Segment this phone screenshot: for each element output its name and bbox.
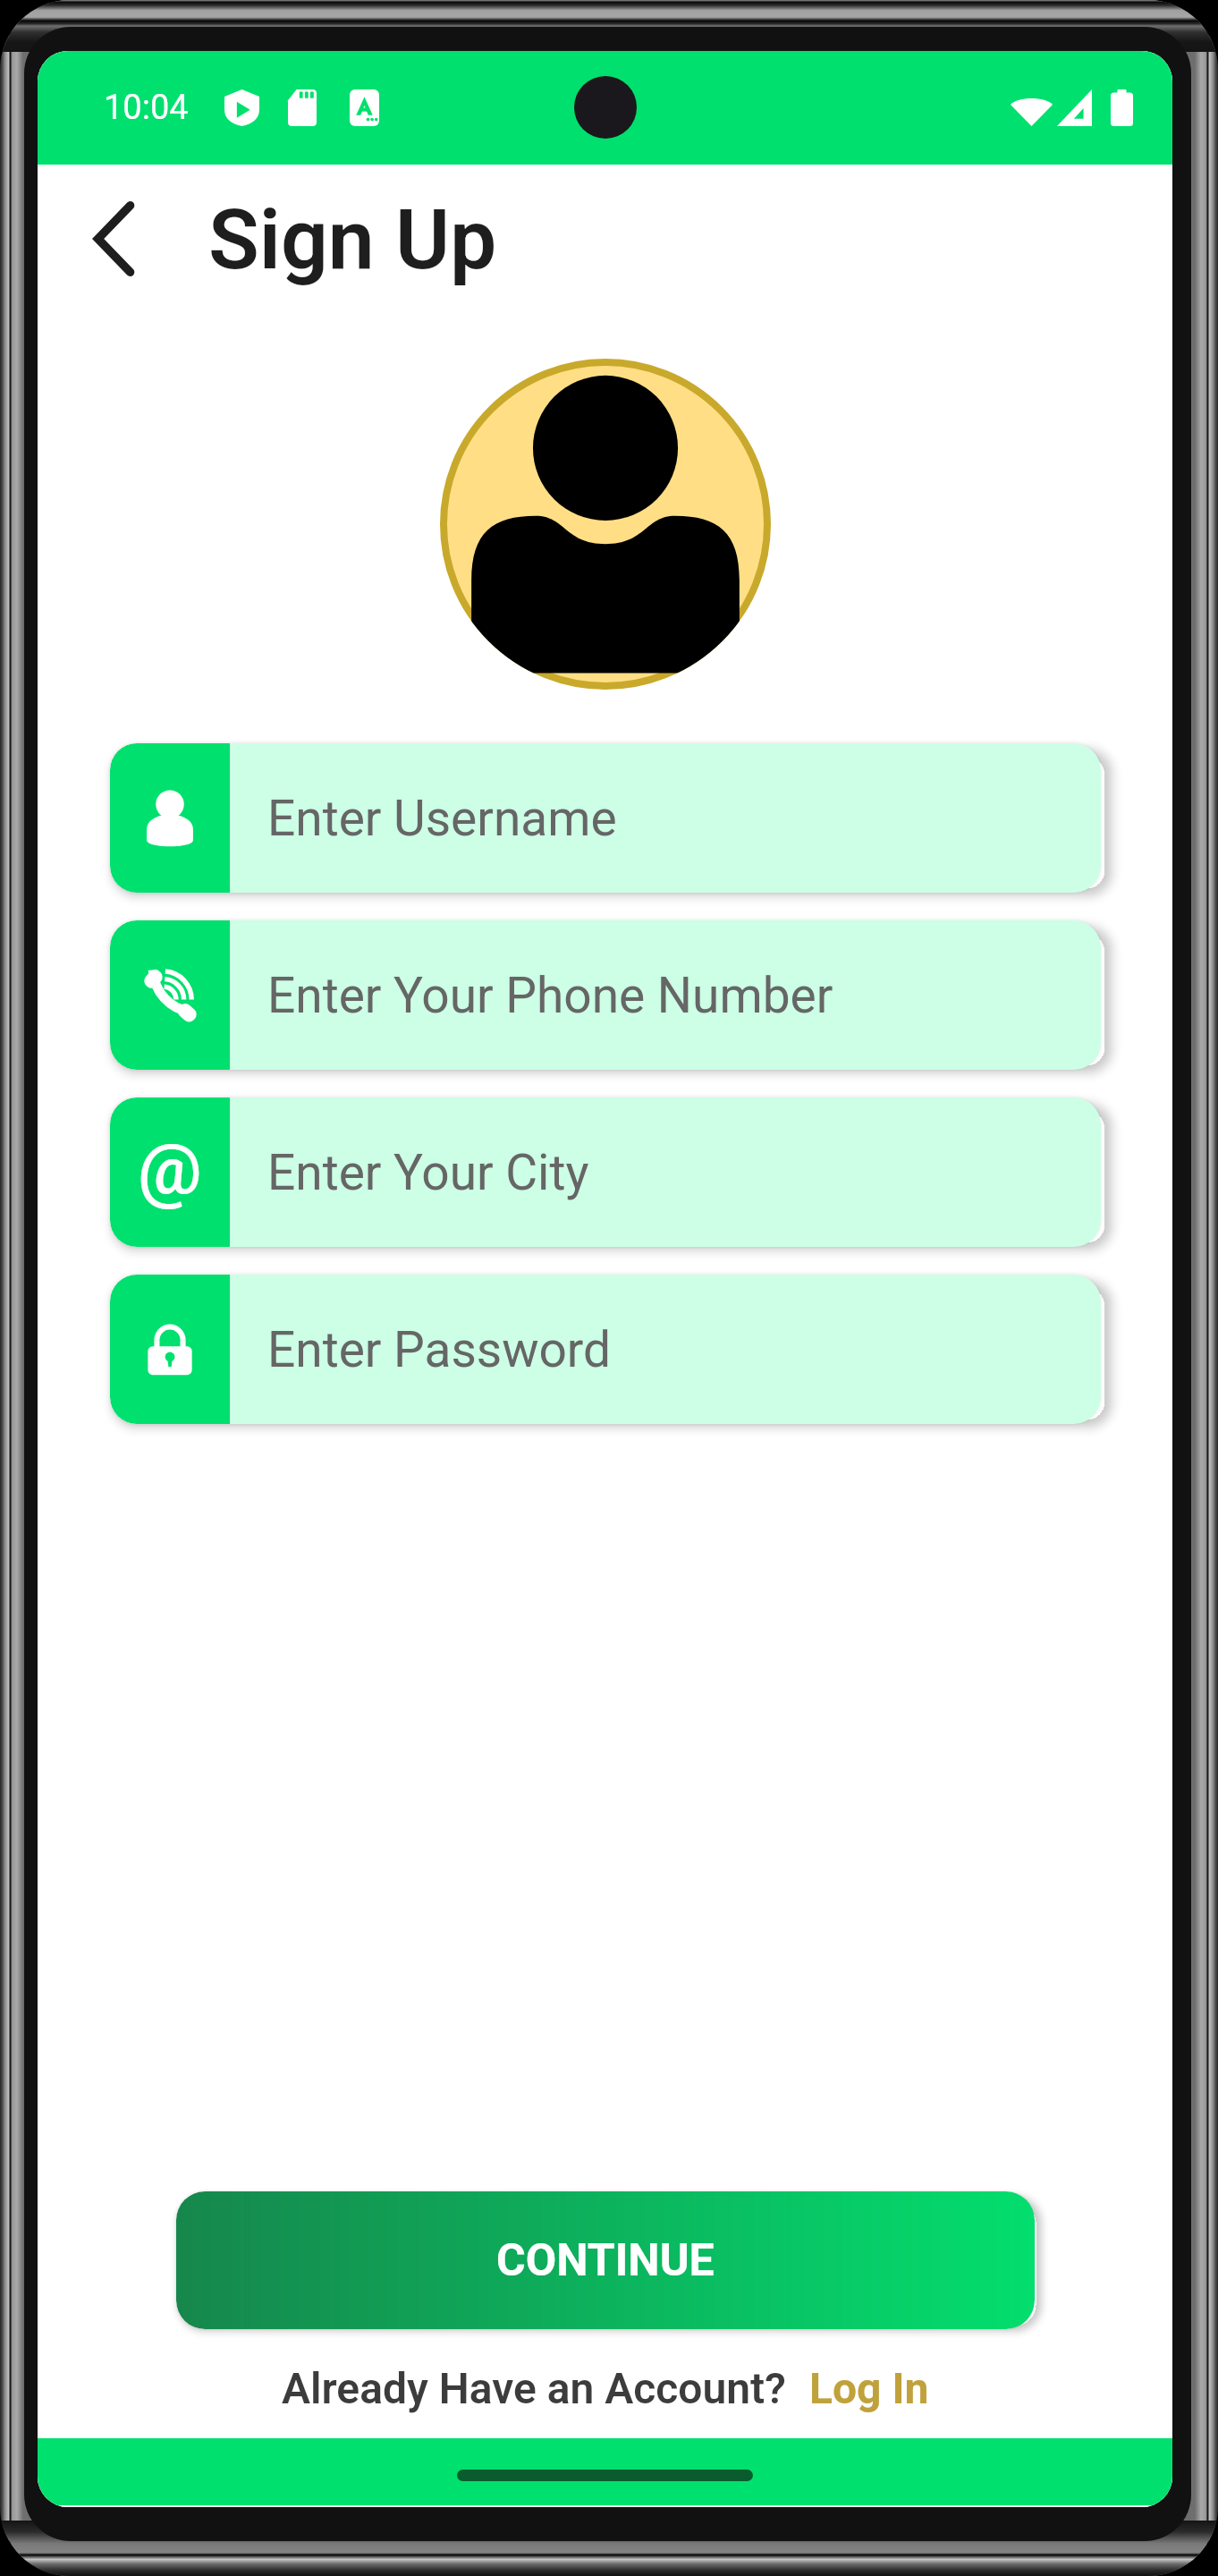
button[interactable]: Enter Your Phone Number <box>110 920 1101 1070</box>
button[interactable]: Enter Password <box>110 1275 1101 1424</box>
staticText: CONTINUE <box>496 2234 715 2287</box>
staticText: @ <box>138 1127 202 1211</box>
staticText: Enter Username <box>267 790 617 847</box>
staticText: 10:04 <box>104 88 189 128</box>
staticText: Enter Password <box>267 1321 612 1378</box>
button[interactable]: @ <box>110 1097 1101 1247</box>
button[interactable]: Back <box>86 198 141 280</box>
button[interactable]: Enter Username <box>110 743 1101 893</box>
staticText: Log In <box>809 2363 929 2413</box>
staticText: Sign Up <box>208 191 497 289</box>
button[interactable]: CONTINUE <box>176 2191 1035 2329</box>
staticText: Enter Your City <box>267 1144 589 1201</box>
staticText: Enter Your Phone Number <box>267 967 833 1024</box>
staticText: Already Have an Account? <box>282 2363 786 2413</box>
button[interactable]: Log In <box>809 2363 929 2413</box>
